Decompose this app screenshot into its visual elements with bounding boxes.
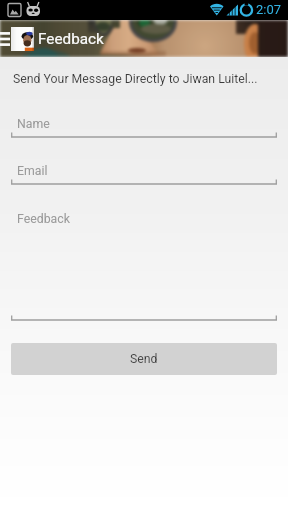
staticText: Feedback bbox=[17, 212, 70, 226]
button[interactable]: Profile photo bbox=[11, 27, 34, 51]
button[interactable]: Feedback bbox=[11, 208, 277, 322]
staticText: Email bbox=[17, 164, 48, 178]
staticText: Send bbox=[130, 352, 158, 366]
button[interactable]: Open navigation drawer bbox=[0, 20, 11, 57]
staticText: Feedback bbox=[38, 30, 104, 48]
staticText: Name bbox=[17, 117, 50, 131]
staticText: Send Your Message Directly to Jiwan Luit… bbox=[13, 72, 258, 86]
button[interactable]: Name bbox=[11, 113, 277, 139]
staticText: 2:07 bbox=[256, 2, 282, 17]
button[interactable]: Send bbox=[11, 343, 277, 375]
button[interactable]: Email bbox=[11, 160, 277, 186]
